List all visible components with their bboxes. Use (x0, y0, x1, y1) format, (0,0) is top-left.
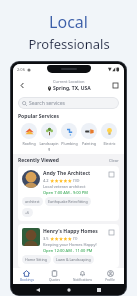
staticText: Henry's Happy Homes (43, 228, 98, 235)
button[interactable]: Landscaping (39, 123, 59, 151)
button[interactable]: Profile (96, 268, 124, 284)
staticText: Home Sitting (25, 257, 48, 262)
staticText: Keeping your Homes Happy! (43, 242, 97, 247)
button[interactable]: Plumbing (59, 123, 79, 146)
button[interactable]: Henry's Happy Homes (18, 224, 119, 268)
button[interactable]: Back (17, 80, 27, 90)
staticText: architect (25, 199, 40, 204)
button[interactable]: Home (64, 285, 74, 295)
staticText: +6 (25, 210, 30, 215)
button[interactable]: Home Sitting (22, 255, 51, 264)
button[interactable]: Andy The Architect (18, 166, 119, 221)
staticText: Plumbing (61, 141, 78, 146)
staticText: Andy The Architect (43, 170, 91, 177)
staticText: Painting (82, 141, 96, 146)
button[interactable]: Roofing (18, 123, 39, 146)
staticText: Electric (103, 141, 116, 146)
button[interactable]: Notifications (68, 268, 96, 284)
staticText: Quotes (49, 278, 60, 282)
staticText: Roofing (22, 141, 36, 146)
staticText: Clear (109, 158, 119, 163)
button[interactable]: architect (22, 197, 43, 206)
staticText: Landscaping (39, 141, 59, 151)
staticText: Search services (29, 100, 65, 107)
button[interactable]: Bookmark (107, 170, 115, 178)
button[interactable]: Painting (79, 123, 99, 146)
button[interactable]: Back (33, 285, 43, 295)
staticText: Local veteran architect (43, 184, 86, 189)
button[interactable]: Quotes (40, 268, 68, 284)
staticText: (10) (73, 178, 80, 183)
staticText: Professionals (28, 35, 110, 53)
button[interactable]: Recents (94, 285, 104, 295)
staticText: Popular Services (18, 113, 60, 120)
button[interactable]: Saved (110, 80, 120, 90)
staticText: 2:06 (17, 67, 25, 72)
staticText: Recently Viewed (18, 157, 59, 164)
staticText: Current Location (53, 79, 85, 84)
button[interactable]: Search services (18, 97, 119, 109)
staticText: Open 7:00 AM - 9:00 PM (43, 190, 88, 195)
staticText: Lawn & Landscaping (56, 257, 91, 262)
staticText: Spring, TX, USA (53, 85, 91, 92)
button[interactable]: Lawn & Landscaping (53, 255, 94, 264)
button[interactable]: Clear (109, 158, 119, 163)
staticText: 4.2 (43, 178, 49, 183)
button[interactable]: Earthquake Retrofitting (45, 197, 91, 206)
button[interactable]: Bookings (13, 268, 40, 284)
staticText: Profile (105, 278, 115, 282)
button[interactable]: Electric (99, 123, 119, 146)
button[interactable]: +6 (22, 208, 33, 217)
staticText: (1) (73, 236, 78, 241)
staticText: 3.5 (43, 236, 49, 241)
button[interactable]: Bookmark (107, 228, 115, 236)
staticText: Earthquake Retrofitting (48, 199, 88, 204)
staticText: Notifications (73, 278, 92, 282)
staticText: Open 12:00 AM - 11:00 PM (43, 248, 93, 253)
staticText: Local (49, 11, 88, 33)
staticText: Bookings (20, 278, 34, 282)
